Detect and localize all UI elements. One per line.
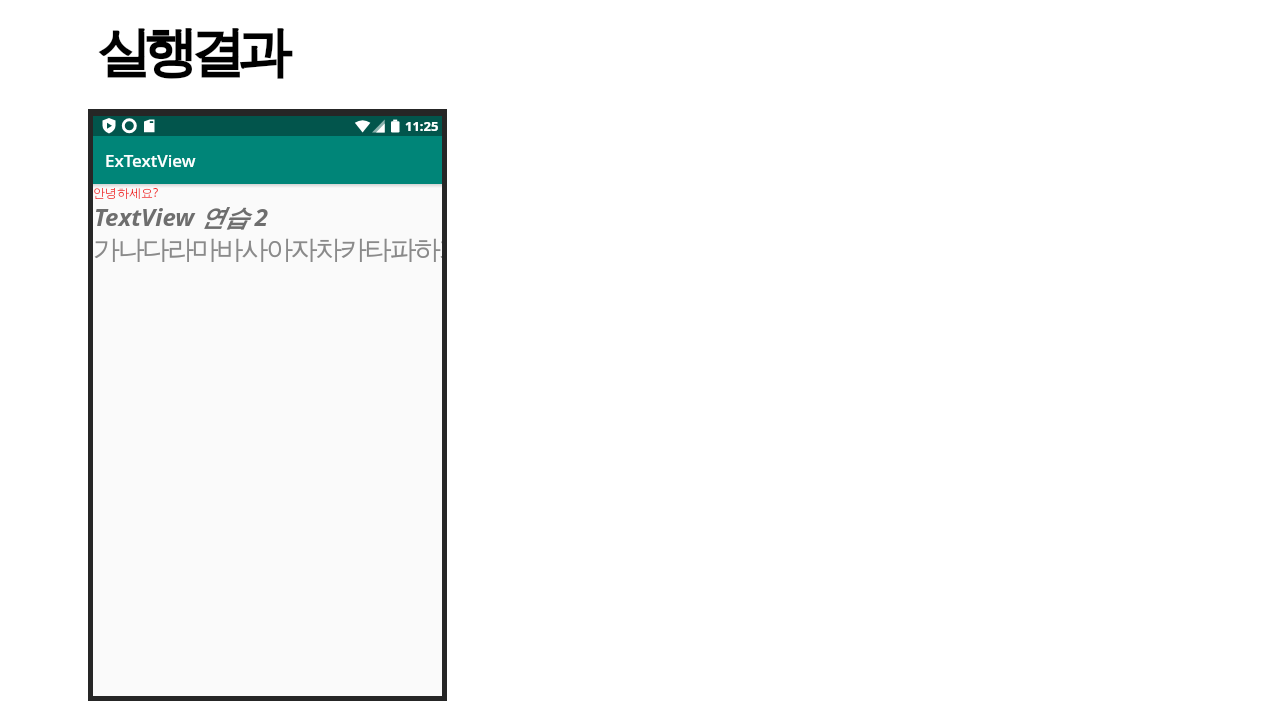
staticText: 가나다라마바사아자차카타파하가나다라 xyxy=(93,233,442,267)
staticText: 11:25 xyxy=(405,117,439,135)
staticText: ExTextView xyxy=(105,149,196,172)
staticText: TextView 연습 2 xyxy=(94,200,268,233)
staticText: 실행결과 xyxy=(100,19,288,87)
staticText: 안녕하세요? xyxy=(93,184,159,200)
